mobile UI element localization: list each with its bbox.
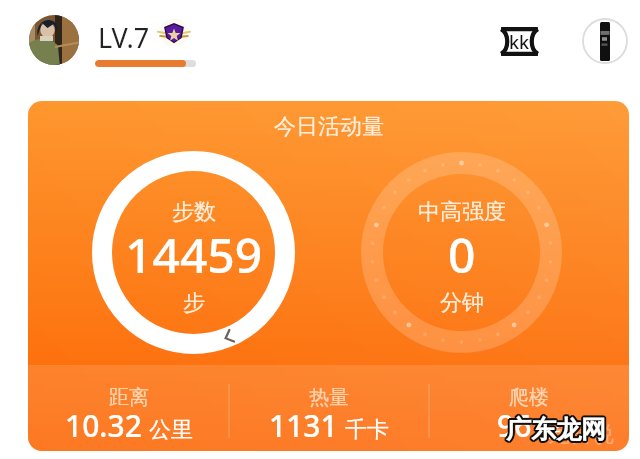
staticText: 广东龙网 [505,412,605,443]
staticText: 1131 [269,405,338,446]
button[interactable]: Profile avatar [29,15,79,65]
button[interactable]: 爬楼 [429,365,629,451]
button[interactable]: Connected device [582,18,628,64]
button[interactable]: 距离 [28,365,229,451]
staticText: 广东龙网 [508,414,608,445]
button[interactable]: 热量 [229,365,429,451]
button[interactable]: 步数 [92,151,295,354]
staticText: 广东龙网 [504,414,604,445]
staticText: 广东龙网 [504,415,604,446]
staticText: 广东龙网 [507,416,607,447]
button[interactable]: kk logo [499,27,540,56]
staticText: 广东龙网 [508,415,608,446]
staticText: kk [509,30,530,55]
staticText: 今日活动量 [274,113,384,141]
staticText: 广东龙网 [507,415,607,446]
staticText: LV.7 [98,19,150,56]
staticText: 广东龙网 [506,416,606,447]
staticText: 广东龙网 [505,415,605,446]
staticText: 广东龙网 [507,413,607,444]
staticText: 距离 [109,385,149,410]
staticText: 广东龙网 [505,416,605,447]
staticText: 14459 [125,222,263,287]
staticText: 0 [448,222,476,287]
staticText: 广东龙网 [505,414,605,445]
staticText: 步 [183,289,205,317]
staticText: 中高强度 [418,198,506,226]
staticText: 广东龙网 [506,415,606,446]
staticText: 层 [539,416,561,444]
button[interactable]: 中高强度 [361,152,562,353]
staticText: 广东龙网 [505,413,605,444]
button[interactable]: Level progress [95,60,196,67]
staticText: 广东龙网 [504,413,604,444]
staticText: 分钟 [440,289,484,317]
staticText: 步数 [172,198,216,226]
staticText: 广东龙网 [506,412,606,443]
staticText: 广东龙网 [506,413,606,444]
staticText: 公里 [149,416,193,444]
staticText: 广东龙网 [507,412,607,443]
staticText: 广东龙网 [506,414,606,445]
staticText: 广东龙网 [507,414,607,445]
staticText: 千卡 [345,416,389,444]
staticText: 热量 [309,385,349,410]
staticText: 96 [497,405,532,446]
staticText: 龙日说 [548,421,614,449]
staticText: 广东龙网 [508,413,608,444]
staticText: 10.32 [65,405,142,446]
staticText: 爬楼 [509,385,549,410]
